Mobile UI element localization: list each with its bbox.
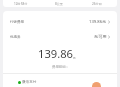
button[interactable]: 优惠券 <box>3 29 117 44</box>
button[interactable]: 行驶费用 <box>3 14 117 29</box>
staticText: 26分钟 <box>92 2 102 6</box>
staticText: 费用明细 › <box>52 64 68 69</box>
staticText: 元 <box>73 56 76 60</box>
staticText: 12时58分 <box>14 2 28 6</box>
staticText: 微信支付 <box>22 80 37 85</box>
staticText: 139.86 <box>38 46 73 61</box>
staticText: 行驶费用 <box>10 20 24 24</box>
staticText: 无可用 <box>94 34 107 39</box>
staticText: 139.86元 <box>89 19 107 25</box>
button[interactable]: 费用明细 › <box>3 64 117 69</box>
staticText: 8公里 <box>55 2 63 6</box>
staticText: 优惠券 <box>10 35 21 39</box>
